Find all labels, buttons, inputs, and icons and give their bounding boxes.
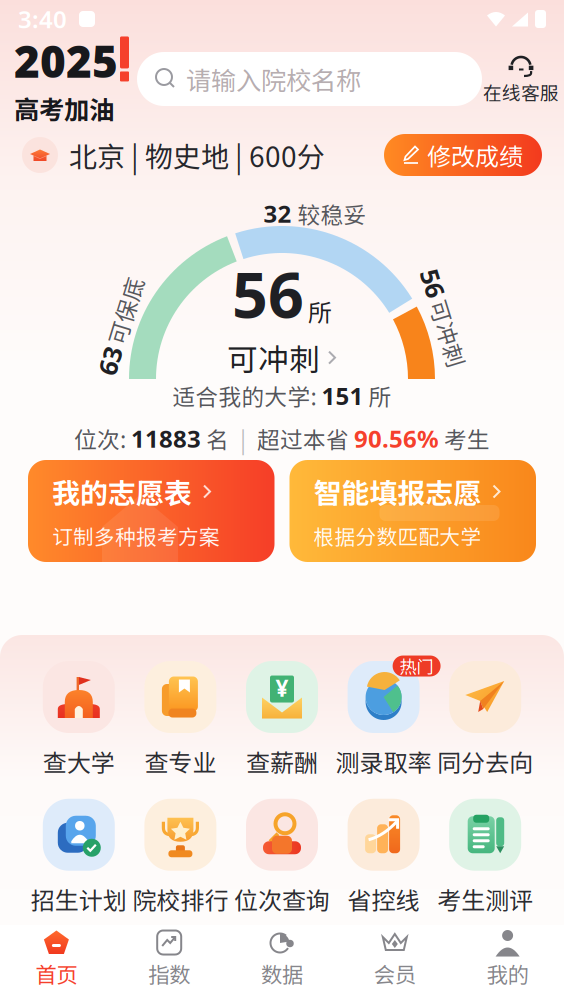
button[interactable]: 会员: [338, 930, 451, 989]
button[interactable]: 智能填报志愿: [289, 460, 536, 562]
staticText: 所: [368, 379, 391, 412]
staticText: 指数: [148, 958, 190, 989]
staticText: 我的志愿表: [52, 471, 192, 512]
button[interactable]: 院校排行: [130, 799, 231, 917]
button[interactable]: 在线客服: [482, 52, 560, 105]
staticText: 考生测评: [437, 882, 533, 917]
staticText: 90.56%: [354, 422, 439, 454]
button[interactable]: 指数: [113, 930, 226, 989]
staticText: 根据分数匹配大学: [313, 521, 481, 551]
staticText: 订制多种报考方案: [52, 521, 220, 551]
button[interactable]: 我的志愿表: [28, 460, 274, 562]
staticText: 数据: [261, 958, 303, 989]
staticText: 请输入院校名称: [186, 61, 361, 97]
button[interactable]: 我的: [451, 930, 564, 989]
staticText: 首页: [35, 958, 77, 989]
staticText: 适合我的大学:: [172, 379, 316, 412]
staticText: 同分去向: [437, 744, 533, 779]
staticText: 2025: [14, 31, 118, 90]
button[interactable]: 查大学: [28, 661, 130, 779]
staticText: 查薪酬: [246, 744, 318, 779]
staticText: 所: [308, 294, 332, 328]
staticText: 56: [393, 301, 421, 335]
staticText: 招生计划: [31, 882, 127, 917]
staticText: 北京 | 物史地 | 600分: [69, 135, 325, 175]
staticText: 查专业: [144, 744, 216, 779]
staticText: 可冲刺: [227, 335, 320, 380]
button[interactable]: 修改成绩: [384, 134, 542, 176]
staticText: 高考加油: [14, 90, 114, 127]
staticText: 超过本省: [257, 422, 349, 455]
button[interactable]: 位次查询: [231, 799, 333, 917]
button[interactable]: 首页: [0, 930, 113, 989]
staticText: 11883: [131, 422, 201, 454]
staticText: |: [240, 422, 246, 455]
staticText: 智能填报志愿: [313, 471, 481, 512]
staticText: 位次查询: [234, 882, 330, 917]
button[interactable]: 热门: [333, 661, 434, 779]
staticText: 位次:: [74, 422, 126, 455]
staticText: 较稳妥: [297, 197, 366, 230]
button[interactable]: 省控线: [333, 799, 434, 917]
staticText: 热门: [400, 653, 434, 679]
staticText: 名: [206, 422, 229, 455]
staticText: 32: [263, 198, 291, 229]
button[interactable]: ¥: [231, 661, 333, 779]
staticText: ¥: [275, 673, 288, 703]
staticText: 56: [232, 252, 304, 335]
staticText: 在线客服: [483, 78, 559, 105]
staticText: 会员: [374, 958, 416, 989]
button[interactable]: 查专业: [130, 661, 231, 779]
staticText: 可保底: [102, 310, 171, 342]
button[interactable]: 考生测评: [434, 799, 536, 917]
staticText: 151: [321, 380, 363, 412]
staticText: 测录取率: [336, 744, 432, 779]
staticText: 可冲刺: [425, 302, 494, 334]
button[interactable]: 同分去向: [434, 661, 536, 779]
button[interactable]: 数据: [226, 930, 338, 989]
staticText: 查大学: [43, 744, 115, 779]
staticText: 考生: [444, 422, 490, 455]
staticText: 省控线: [348, 882, 420, 917]
staticText: 修改成绩: [427, 138, 523, 172]
staticText: 院校排行: [132, 882, 228, 917]
staticText: 3:40: [18, 3, 67, 35]
button[interactable]: 招生计划: [28, 799, 130, 917]
staticText: 我的: [487, 958, 529, 989]
